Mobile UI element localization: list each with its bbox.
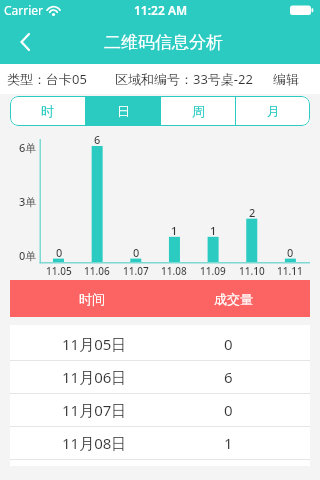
staticText: 11月08日 [62, 433, 127, 453]
staticText: 6单 [19, 140, 37, 155]
button[interactable]: 11月05日 [10, 328, 310, 361]
staticText: 0 [56, 245, 63, 260]
staticText: 编辑 [273, 71, 299, 87]
staticText: 时 [41, 103, 54, 119]
staticText: 0 [287, 245, 294, 260]
staticText: 11.06 [84, 264, 110, 278]
staticText: 11:22 AM [134, 2, 188, 18]
staticText: 0单 [19, 248, 37, 263]
staticText: 周 [192, 103, 205, 119]
staticText: 月 [267, 103, 280, 119]
staticText: 时间 [79, 291, 105, 307]
staticText: 0 [224, 334, 233, 354]
staticText: 区域和编号：33号桌-22 [115, 70, 253, 88]
staticText: 11.10 [239, 264, 265, 278]
staticText: 11月06日 [62, 367, 127, 387]
button[interactable]: 编辑 [0, 0, 180, 22]
button[interactable]: 日 [86, 96, 160, 126]
staticText: 1 [210, 223, 217, 238]
staticText: 6 [224, 367, 233, 387]
staticText: 11月07日 [62, 400, 127, 420]
staticText: 11月05日 [62, 334, 127, 354]
staticText: 11.09 [200, 264, 226, 278]
button[interactable]: 11月06日 [10, 361, 310, 394]
staticText: 11.11 [277, 264, 303, 278]
staticText: Carrier [4, 2, 44, 18]
staticText: 11.08 [161, 264, 187, 278]
staticText: 11.05 [46, 264, 72, 278]
staticText: 0 [133, 245, 140, 260]
staticText: 1 [224, 433, 233, 453]
staticText: 2 [249, 205, 256, 220]
button[interactable]: 月 [236, 96, 310, 126]
staticText: 1 [171, 223, 178, 238]
staticText: 0 [224, 400, 233, 420]
staticText: 二维码信息分析 [104, 32, 223, 53]
button[interactable] [6, 26, 42, 60]
staticText: 11.07 [123, 264, 149, 278]
staticText: 日 [117, 103, 130, 119]
staticText: 成交量 [214, 291, 253, 307]
button[interactable]: 11月07日 [10, 394, 310, 427]
staticText: 6 [94, 132, 101, 147]
staticText: 3单 [19, 194, 37, 209]
button[interactable]: 周 [161, 96, 235, 126]
button[interactable]: 11月08日 [10, 427, 310, 460]
button[interactable]: 时 [10, 96, 85, 126]
staticText: 类型：台卡05 [7, 70, 87, 88]
